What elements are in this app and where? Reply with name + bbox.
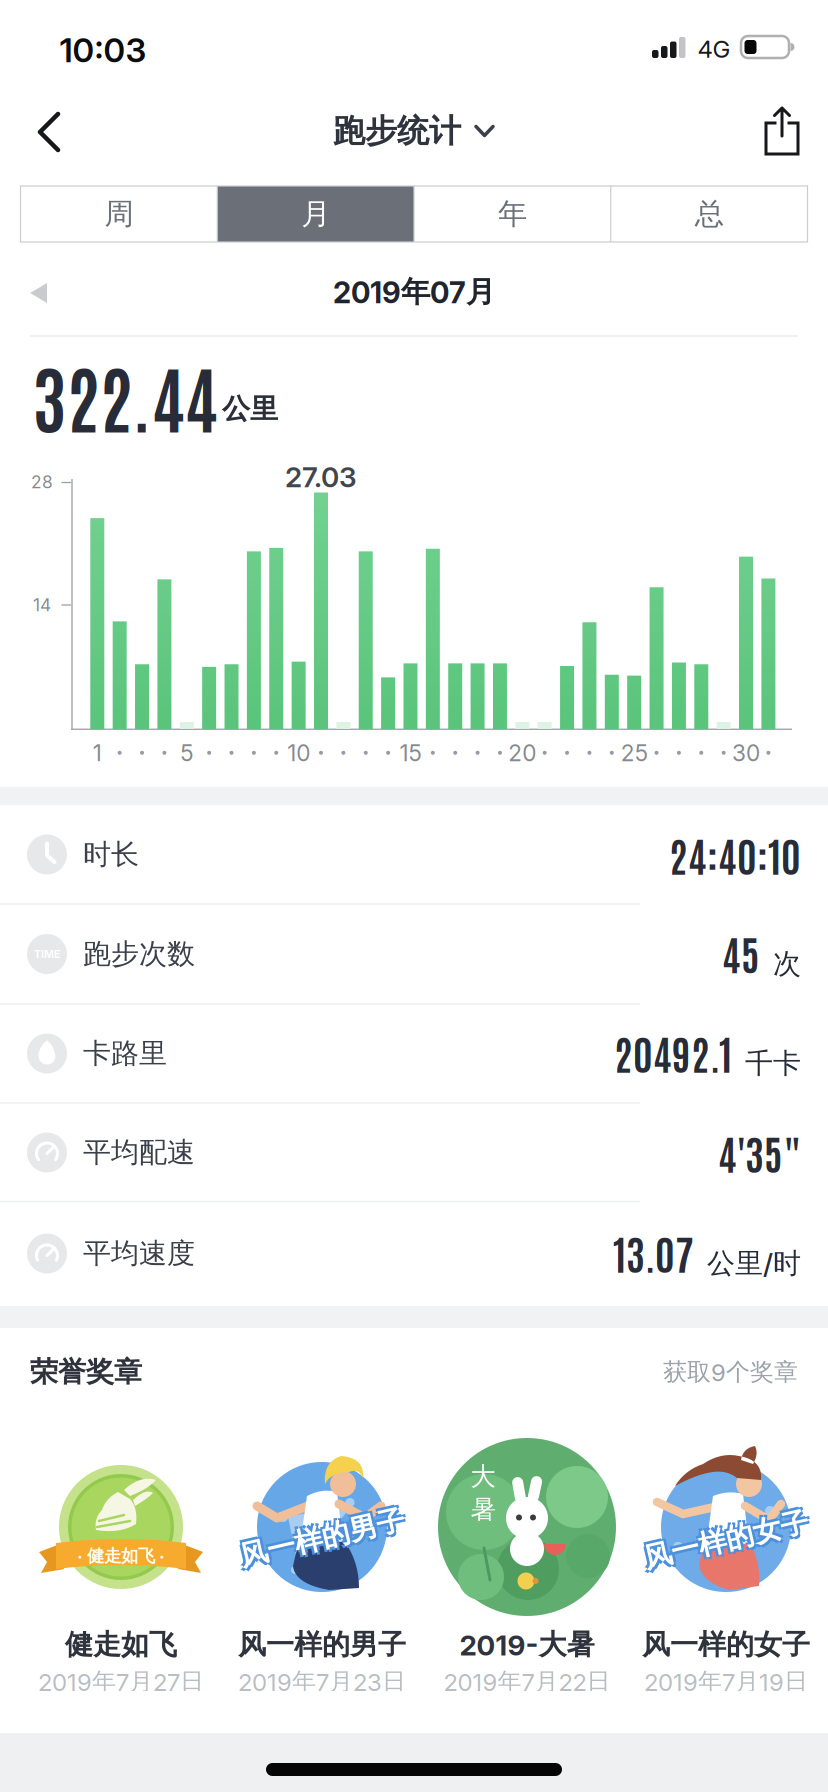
staticText: 30 — [732, 740, 760, 766]
staticText: 平均配速 — [83, 1135, 195, 1170]
staticText: 荣誉奖章 — [30, 1355, 142, 1389]
button[interactable]: 奖章 健走如飞 — [36, 1442, 206, 1612]
staticText: 健走如飞 — [65, 1628, 177, 1662]
staticText: 4'35" — [718, 1127, 801, 1178]
staticText: 暑 — [470, 1494, 495, 1525]
button[interactable]: 年 — [414, 186, 611, 242]
staticText: 2019年07月 — [333, 274, 495, 310]
staticText: 13.07 — [613, 1226, 694, 1278]
staticText: 总 — [695, 196, 724, 232]
staticText: 322.44 — [32, 349, 217, 443]
staticText: 45 — [722, 927, 760, 979]
staticText: 时长 — [83, 837, 139, 872]
staticText: 24:40:10 — [669, 829, 801, 880]
staticText: 次 — [773, 947, 801, 981]
button[interactable]: Back — [37, 111, 79, 153]
staticText: 风一样的男子 — [236, 1519, 404, 1553]
staticText: 风一样的男子 — [238, 1521, 406, 1555]
button[interactable]: 奖章 2019-大暑 — [438, 1438, 616, 1616]
staticText: 15 — [399, 740, 421, 766]
staticText: 公里/时 — [707, 1246, 801, 1280]
staticText: 2019年7月22日 — [443, 1667, 610, 1696]
staticText: 月 — [301, 196, 330, 232]
button[interactable]: Share — [764, 106, 799, 156]
staticText: 大 — [470, 1461, 495, 1492]
staticText: 28 — [31, 472, 53, 492]
staticText: 5 — [180, 740, 193, 766]
staticText: TIME — [34, 948, 60, 960]
staticText: 风一样的女子 — [640, 1521, 808, 1555]
button[interactable]: 月 — [217, 186, 414, 242]
staticText: 跑步次数 — [83, 937, 195, 971]
staticText: 风一样的女子 — [642, 1628, 810, 1662]
staticText: 风一样的女子 — [644, 1525, 812, 1559]
staticText: 4G — [697, 35, 730, 63]
staticText: 10 — [287, 740, 310, 766]
staticText: 2019年7月23日 — [238, 1667, 406, 1696]
staticText: 2019年7月27日 — [38, 1667, 204, 1696]
staticText: 周 — [104, 196, 133, 232]
button[interactable]: 切换统计类型 — [333, 111, 495, 151]
staticText: 千卡 — [745, 1046, 801, 1080]
staticText: 风一样的男子 — [238, 1628, 406, 1662]
staticText: 风一样的女子 — [642, 1523, 810, 1557]
button[interactable]: 奖章 风一样的女子 — [630, 1442, 822, 1612]
button[interactable]: 奖章 风一样的男子 — [226, 1442, 418, 1612]
staticText: 2019-大暑 — [459, 1628, 594, 1662]
staticText: 1 — [93, 740, 102, 766]
staticText: · 健走如飞 · — [77, 1545, 165, 1567]
staticText: 跑步统计 — [333, 111, 461, 151]
staticText: 平均速度 — [83, 1236, 195, 1271]
staticText: 风一样的男子 — [236, 1523, 404, 1557]
staticText: 10:03 — [59, 30, 146, 70]
staticText: 风一样的女子 — [644, 1521, 812, 1555]
staticText: 风一样的女子 — [640, 1525, 808, 1559]
staticText: 20 — [508, 740, 536, 766]
button[interactable]: 获取9个奖章 — [663, 1357, 798, 1387]
button[interactable]: 周 — [20, 186, 217, 242]
staticText: 14 — [33, 595, 51, 615]
staticText: 风一样的男子 — [240, 1523, 408, 1557]
staticText: 年 — [498, 196, 527, 232]
staticText: 获取9个奖章 — [663, 1357, 798, 1387]
staticText: 25 — [621, 740, 648, 766]
button[interactable]: 总 — [611, 186, 808, 242]
staticText: 20492.1 — [614, 1026, 732, 1078]
staticText: 公里 — [222, 392, 278, 426]
staticText: 2019年7月19日 — [644, 1667, 808, 1696]
button[interactable]: 上个月 — [30, 283, 47, 303]
staticText: 卡路里 — [83, 1036, 167, 1071]
staticText: 27.03 — [285, 460, 357, 493]
staticText: 风一样的男子 — [240, 1519, 408, 1553]
